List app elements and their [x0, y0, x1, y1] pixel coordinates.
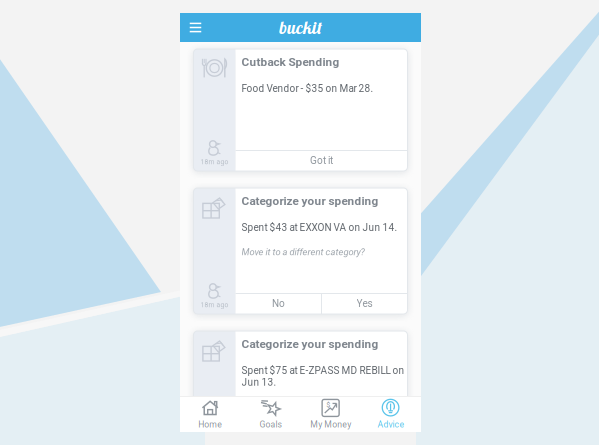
staticText: Categorize your spending	[241, 194, 378, 208]
staticText: Got it	[310, 155, 333, 166]
staticText: Goals	[259, 419, 281, 430]
staticText: Move it to a different category?	[241, 246, 364, 257]
staticText: $	[326, 400, 330, 409]
staticText: Home	[198, 419, 222, 430]
staticText: Advice	[377, 419, 404, 430]
staticText: Yes	[356, 298, 372, 309]
button[interactable]: Home	[180, 396, 240, 432]
staticText: 18m ago	[200, 428, 228, 436]
button[interactable]: Advice	[361, 396, 421, 432]
button[interactable]: Yes	[321, 293, 407, 314]
button[interactable]: Menu	[180, 13, 211, 42]
staticText: My Money	[310, 419, 351, 430]
staticText: Spent $43 at EXXON VA on Jun 14.	[241, 222, 397, 233]
button[interactable]: No	[235, 293, 321, 314]
button[interactable]: Goals	[240, 396, 300, 432]
button[interactable]: Got it	[235, 150, 407, 171]
staticText: Food Vendor - $35 on Mar 28.	[241, 83, 373, 94]
staticText: Categorize your spending	[241, 337, 378, 351]
staticText: 18m ago	[200, 301, 228, 309]
staticText: Spent $75 at E-ZPASS MD REBILL on Jun 13…	[241, 365, 404, 388]
staticText: Cutback Spending	[241, 55, 339, 69]
staticText: 18m ago	[200, 158, 228, 166]
button[interactable]: $	[300, 396, 361, 432]
staticText: buckit	[279, 17, 322, 38]
staticText: No	[272, 298, 285, 309]
